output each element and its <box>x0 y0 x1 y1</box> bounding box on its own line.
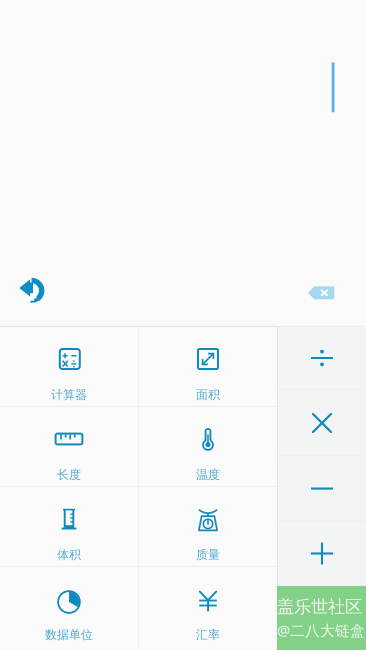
button[interactable]: 计算器 <box>0 327 138 406</box>
button[interactable]: 汇率 <box>139 567 277 650</box>
button[interactable]: 面积 <box>139 327 277 406</box>
staticText: 体积 <box>57 547 81 562</box>
button[interactable]: 长度 <box>0 407 138 486</box>
staticText: 面积 <box>196 387 220 402</box>
button[interactable]: Multiply <box>278 390 366 455</box>
staticText: 汇率 <box>196 627 220 642</box>
staticText: 长度 <box>57 467 81 482</box>
button[interactable]: 数据单位 <box>0 567 138 650</box>
button[interactable]: Divide <box>278 326 366 389</box>
staticText: 盖乐世社区 <box>277 596 362 617</box>
button[interactable]: 温度 <box>139 407 277 486</box>
button[interactable]: Add <box>278 521 366 585</box>
staticText: 质量 <box>196 547 220 562</box>
staticText: 温度 <box>196 467 220 482</box>
button[interactable]: 质量 <box>139 487 277 566</box>
staticText: 计算器 <box>51 387 87 402</box>
button[interactable]: Delete <box>294 272 366 314</box>
staticText: 数据单位 <box>45 627 93 642</box>
staticText: @二八大链盒 <box>277 620 365 640</box>
button[interactable]: 体积 <box>0 487 138 566</box>
button[interactable]: Undo <box>0 265 58 318</box>
button[interactable]: Subtract <box>278 456 366 520</box>
button[interactable]: Equals <box>278 586 366 650</box>
